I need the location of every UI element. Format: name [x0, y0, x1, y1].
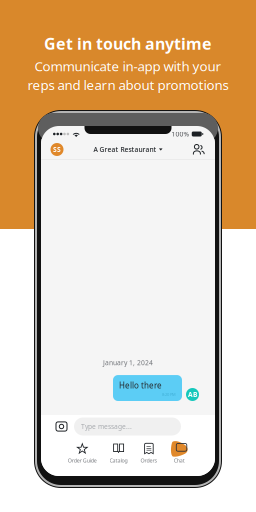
- button[interactable]: Account: [48, 140, 66, 158]
- staticText: Order Guide: [68, 457, 97, 464]
- button[interactable]: Type message...: [74, 417, 181, 435]
- staticText: SS: [53, 145, 61, 154]
- staticText: 8:20 PM: [162, 392, 176, 397]
- button[interactable]: Contacts: [190, 140, 208, 158]
- staticText: Get in touch anytime: [44, 33, 212, 54]
- button[interactable]: A Great Restaurant: [93, 140, 163, 158]
- staticText: 100%: [171, 130, 189, 138]
- button[interactable]: Chat: [170, 438, 188, 476]
- staticText: Catalog: [110, 457, 128, 464]
- button[interactable]: Catalog: [110, 438, 128, 476]
- staticText: Type message...: [81, 422, 132, 431]
- button[interactable]: Orders: [140, 438, 157, 476]
- staticText: January 1, 2024: [103, 358, 153, 367]
- staticText: Chat: [174, 457, 185, 464]
- staticText: A Great Restaurant: [93, 145, 156, 154]
- staticText: AB: [188, 390, 197, 399]
- staticText: Communicate in-app with your: [34, 57, 221, 75]
- staticText: Orders: [140, 457, 157, 464]
- staticText: Hello there: [119, 380, 162, 391]
- button[interactable]: Camera: [54, 419, 69, 434]
- staticText: reps and learn about promotions: [27, 76, 228, 94]
- button[interactable]: Order Guide: [68, 438, 97, 476]
